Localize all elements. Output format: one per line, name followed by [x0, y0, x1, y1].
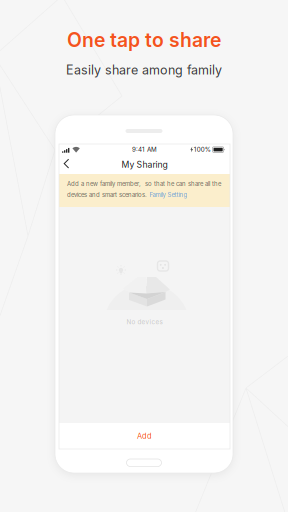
staticText: Add a new family member, so that he can … — [67, 180, 221, 187]
staticText: Family Setting — [149, 191, 187, 198]
staticText: Add — [137, 431, 152, 440]
staticText: 100% — [194, 146, 211, 153]
button[interactable]: Family Setting — [149, 191, 187, 198]
staticText: Easily share among family — [66, 62, 222, 78]
staticText: No devices — [126, 318, 162, 326]
staticText: One tap to share — [67, 28, 221, 52]
staticText: My Sharing — [121, 159, 167, 170]
button[interactable]: Add — [59, 423, 230, 449]
staticText: 9:41 AM — [132, 146, 157, 153]
button[interactable]: Back — [59, 155, 78, 174]
staticText: devices and smart scenarios. — [67, 191, 147, 198]
